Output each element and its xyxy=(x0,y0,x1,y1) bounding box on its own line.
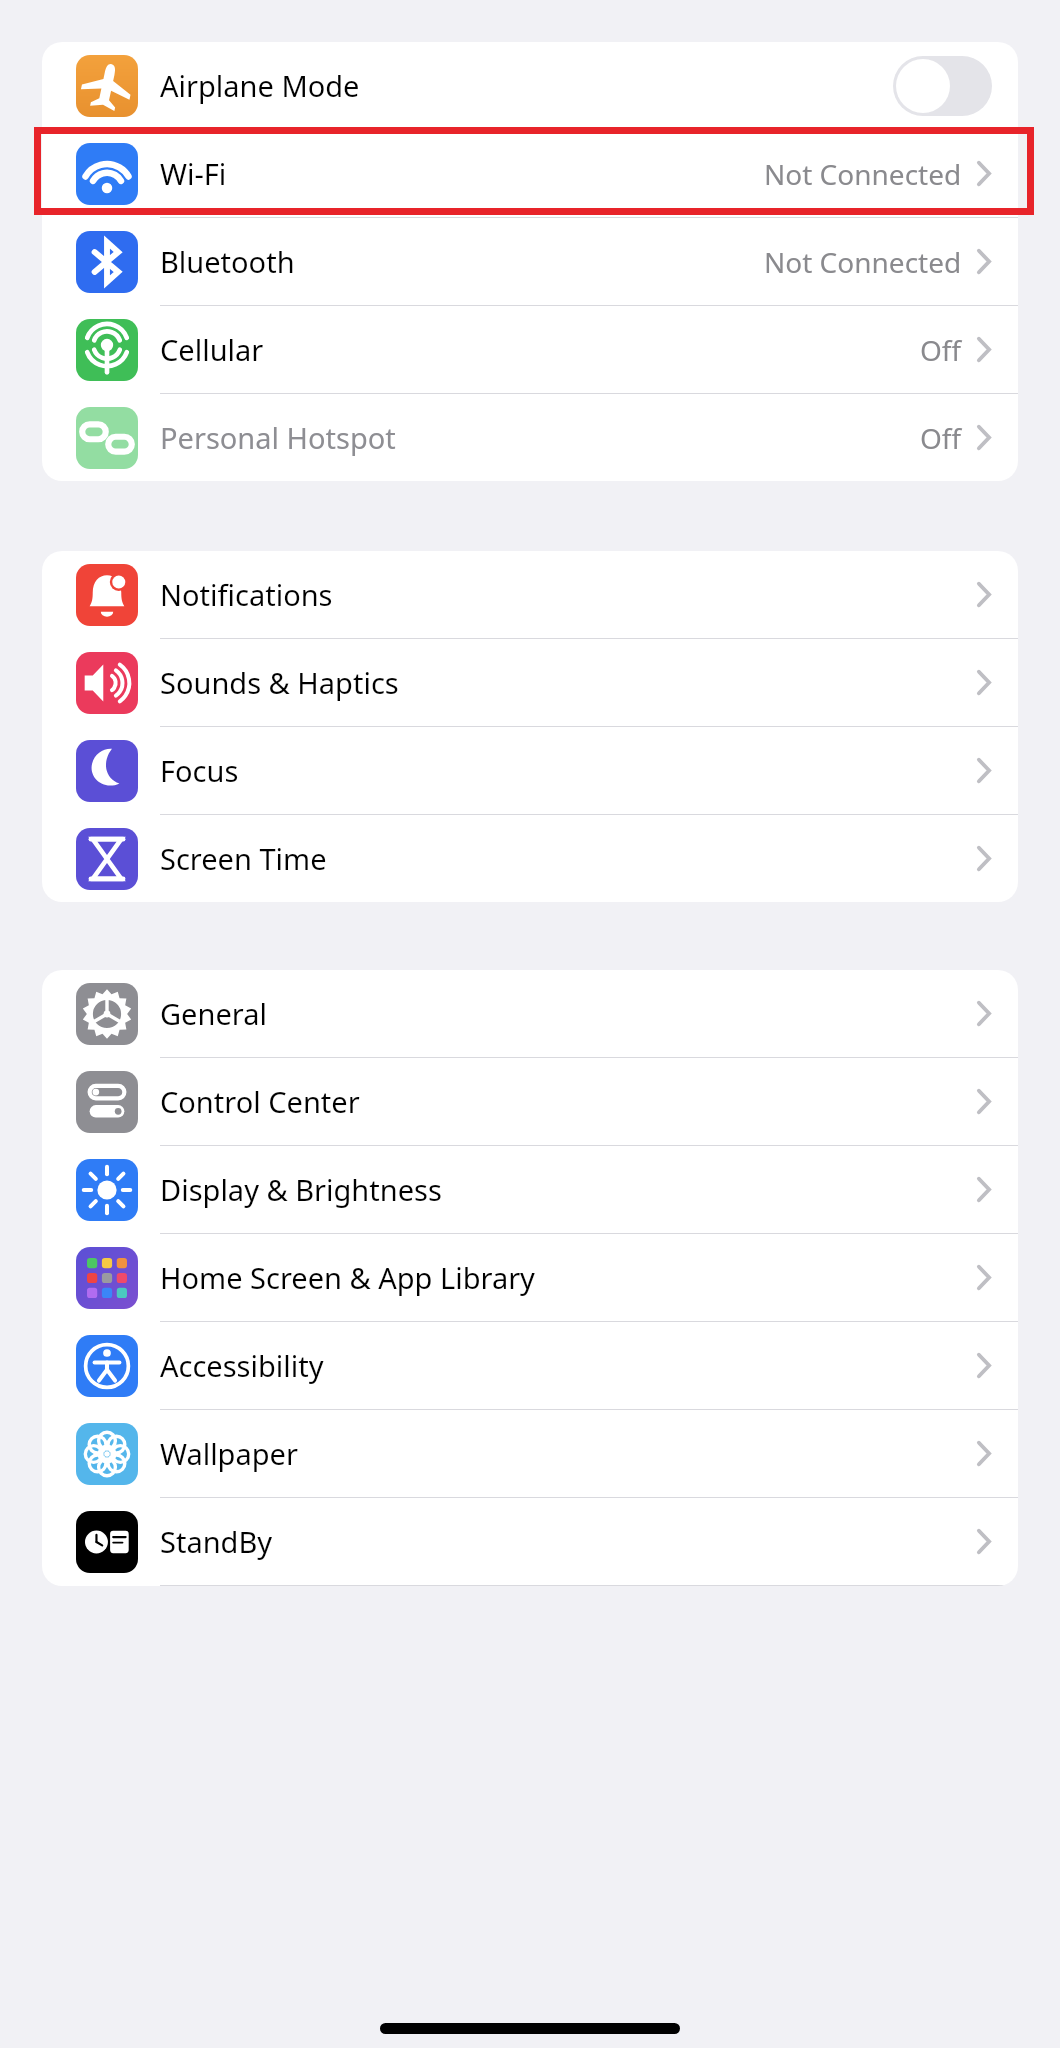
staticText: General xyxy=(160,994,976,1033)
button[interactable]: Control Center xyxy=(42,1058,1018,1145)
staticText: Bluetooth xyxy=(160,242,764,281)
button[interactable]: Personal Hotspot xyxy=(42,394,1018,481)
staticText: Airplane Mode xyxy=(160,66,893,105)
button[interactable]: Display & Brightness xyxy=(42,1146,1018,1233)
staticText: Sounds & Haptics xyxy=(160,663,976,702)
button[interactable]: Airplane Mode xyxy=(42,42,1018,129)
button[interactable]: General xyxy=(42,970,1018,1057)
button[interactable]: Cellular xyxy=(42,306,1018,393)
button[interactable]: Wallpaper xyxy=(42,1410,1018,1497)
staticText: Wallpaper xyxy=(160,1434,976,1473)
staticText: Control Center xyxy=(160,1082,976,1121)
button[interactable]: Screen Time xyxy=(42,815,1018,902)
staticText: Home Screen & App Library xyxy=(160,1258,976,1297)
staticText: Notifications xyxy=(160,575,976,614)
button[interactable]: Accessibility xyxy=(42,1322,1018,1409)
button[interactable]: Wi-Fi xyxy=(42,130,1018,217)
staticText: Personal Hotspot xyxy=(160,418,920,457)
staticText: Not Connected xyxy=(764,243,962,281)
button[interactable]: Bluetooth xyxy=(42,218,1018,305)
staticText: Accessibility xyxy=(160,1346,976,1385)
staticText: Wi-Fi xyxy=(160,154,764,193)
button[interactable]: Notifications xyxy=(42,551,1018,638)
button[interactable]: Airplane Mode toggle xyxy=(893,56,992,116)
staticText: Off xyxy=(920,331,962,369)
staticText: StandBy xyxy=(160,1522,976,1561)
button[interactable]: StandBy xyxy=(42,1498,1018,1585)
button[interactable]: Focus xyxy=(42,727,1018,814)
staticText: Screen Time xyxy=(160,839,976,878)
staticText: Off xyxy=(920,419,962,457)
staticText: Not Connected xyxy=(764,155,962,193)
button[interactable]: Home Screen & App Library xyxy=(42,1234,1018,1321)
button[interactable]: Sounds & Haptics xyxy=(42,639,1018,726)
staticText: Cellular xyxy=(160,330,920,369)
staticText: Focus xyxy=(160,751,976,790)
staticText: Display & Brightness xyxy=(160,1170,976,1209)
